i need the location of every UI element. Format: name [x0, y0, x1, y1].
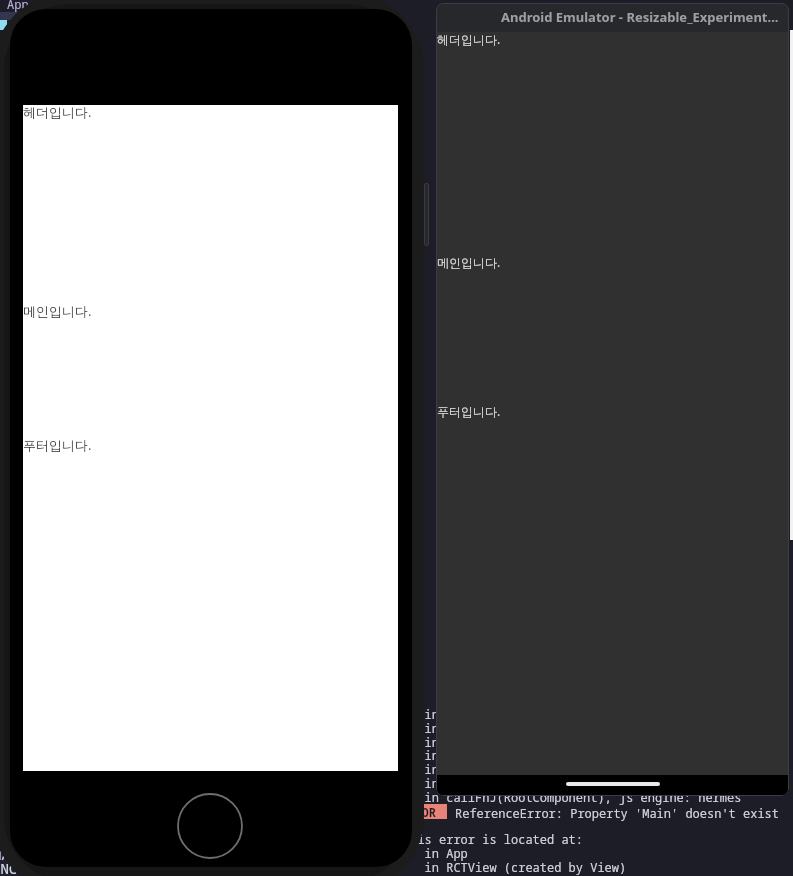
staticText: in RCTView (created by View): [403, 859, 627, 875]
staticText: in withDevTools(App): [403, 747, 569, 763]
staticText: 푸터입니다.: [23, 436, 92, 454]
button[interactable]: Home: [177, 793, 243, 859]
staticText: NA: [0, 845, 10, 864]
staticText: Android Emulator - Resizable_Experiment.…: [501, 8, 779, 26]
staticText: in callFnJ(RootComponent), js engine: he…: [403, 789, 742, 805]
staticText: in AppContainer: [403, 775, 533, 791]
staticText: 헤더입니다.: [23, 103, 92, 121]
staticText: 헤더입니다.: [437, 31, 501, 47]
staticText: in View (created by App): [403, 720, 598, 736]
staticText: ERROR: [400, 804, 437, 819]
staticText: in RCTView (created by AppContainer): [403, 761, 684, 777]
staticText: in App (created by withDevTools(App)): [403, 734, 692, 750]
staticText: 메인입니다.: [437, 254, 501, 270]
staticText: This error is located at:: [403, 831, 584, 847]
staticText: in RCTView (created by View): [403, 706, 627, 722]
staticText: App: [7, 0, 29, 12]
staticText: in App: [403, 845, 468, 861]
staticText: ReferenceError: Property 'Main' doesn't …: [455, 805, 780, 821]
staticText: 메인입니다.: [23, 302, 92, 320]
staticText: 푸터입니다.: [437, 403, 501, 419]
staticText: ANC: [0, 859, 18, 876]
